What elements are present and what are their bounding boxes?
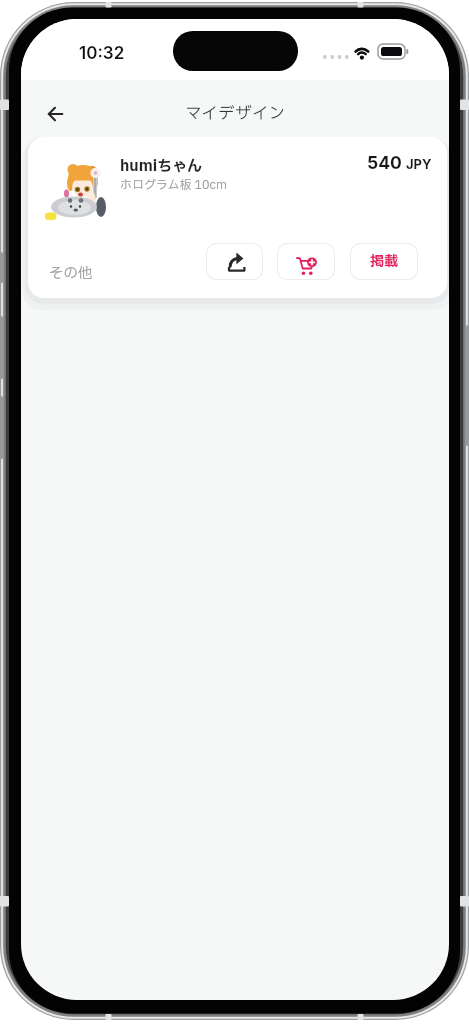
staticText: 540	[367, 152, 402, 173]
button[interactable]	[277, 243, 335, 280]
staticText: 掲載	[370, 251, 398, 272]
button[interactable]: 掲載	[350, 243, 418, 280]
staticText: humiちゃん	[120, 155, 203, 177]
staticText: JPY	[406, 156, 432, 172]
staticText: マイデザイン	[185, 102, 286, 127]
button[interactable]	[37, 97, 73, 129]
staticText: その他	[49, 263, 93, 285]
staticText: ホログラム板 10cm	[120, 176, 227, 194]
staticText: 10:32	[79, 43, 125, 63]
button[interactable]	[206, 243, 263, 280]
